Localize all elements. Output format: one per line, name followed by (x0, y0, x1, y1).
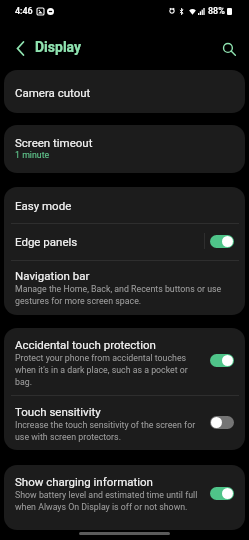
staticText: Protect your phone from accidental touch… (15, 353, 188, 387)
button[interactable]: Edge panels (4, 223, 245, 259)
staticText: Touch sensitivity (15, 405, 101, 418)
button[interactable]: Edge panels (210, 235, 234, 248)
staticText: Easy mode (15, 199, 72, 212)
button[interactable]: Navigation bar (4, 259, 245, 315)
button[interactable]: Easy mode (4, 187, 245, 223)
staticText: Screen timeout (15, 136, 93, 149)
staticText: 4:46 (15, 6, 33, 17)
button[interactable]: Navigate up (5, 33, 36, 64)
staticText: Navigation bar (15, 269, 90, 282)
button[interactable]: Search (214, 34, 245, 65)
staticText: Increase the touch sensitivity of the sc… (15, 420, 196, 442)
button[interactable]: Show charging information (4, 465, 245, 530)
button[interactable]: Screen timeout (4, 125, 245, 173)
staticText: Display (35, 39, 82, 55)
staticText: Accidental touch protection (15, 338, 156, 351)
staticText: Manage the Home, Back, and Recents butto… (15, 284, 222, 306)
button[interactable]: Touch sensitivity (210, 416, 234, 429)
staticText: 88% (208, 6, 225, 17)
staticText: Edge panels (15, 235, 78, 248)
button[interactable]: Camera cutout (4, 70, 245, 113)
staticText: Show charging information (15, 475, 153, 488)
button[interactable]: Accidental touch protection (4, 328, 245, 395)
button[interactable]: Show charging information (210, 487, 234, 500)
button[interactable]: Touch sensitivity (4, 395, 245, 450)
button[interactable]: Accidental touch protection (210, 354, 234, 367)
staticText: Show battery level and estimated time un… (15, 490, 198, 512)
staticText: Camera cutout (15, 86, 91, 99)
staticText: 1 minute (15, 150, 50, 160)
